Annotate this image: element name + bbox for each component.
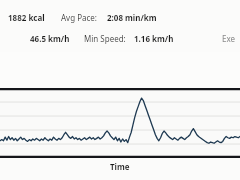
staticText: 2:08 min/km: [107, 12, 157, 23]
button[interactable]: :: [0, 12, 157, 23]
staticText: Avg Pace:: [61, 12, 97, 23]
button[interactable]: Speed over time chart: [0, 88, 240, 158]
staticText: Min Speed:: [84, 33, 126, 44]
staticText: 1882 kcal: [8, 12, 45, 23]
staticText: 1.16 km/h: [134, 33, 174, 44]
staticText: 46.5 km/h: [30, 33, 70, 44]
button[interactable]: 46.5 km/h: [0, 33, 240, 44]
staticText: Time: [110, 161, 130, 172]
staticText: Exe: [222, 33, 236, 44]
